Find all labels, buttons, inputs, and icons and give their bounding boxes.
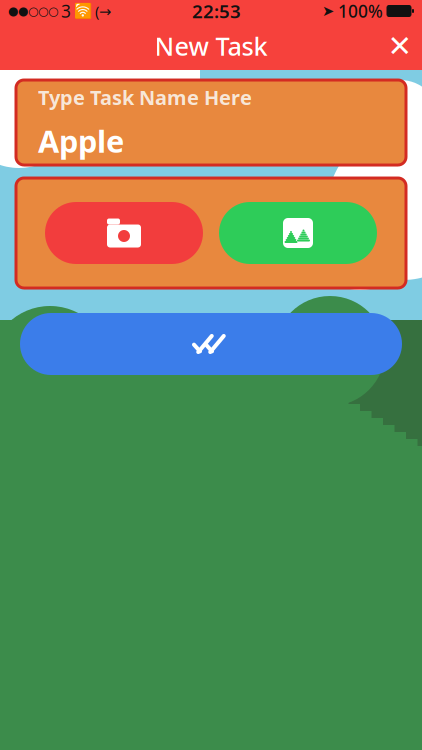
staticText: 3 xyxy=(61,0,71,22)
staticText: New Task xyxy=(154,29,267,63)
staticText: ✕ xyxy=(387,29,412,63)
staticText: 🛜 xyxy=(74,3,92,19)
staticText: (→ xyxy=(95,1,111,21)
staticText: ●●○○○ xyxy=(8,4,58,18)
staticText: Type Task Name Here xyxy=(38,84,252,110)
button[interactable]: Save Task xyxy=(20,313,402,375)
button[interactable]: Choose Photo xyxy=(219,202,377,264)
staticText: 100% xyxy=(338,0,383,22)
button[interactable]: Close xyxy=(378,24,422,68)
staticText: 22:53 xyxy=(192,0,241,23)
staticText: ➤ xyxy=(322,3,334,19)
button[interactable]: Take Photo xyxy=(45,202,203,264)
staticText: Apple xyxy=(38,120,124,161)
